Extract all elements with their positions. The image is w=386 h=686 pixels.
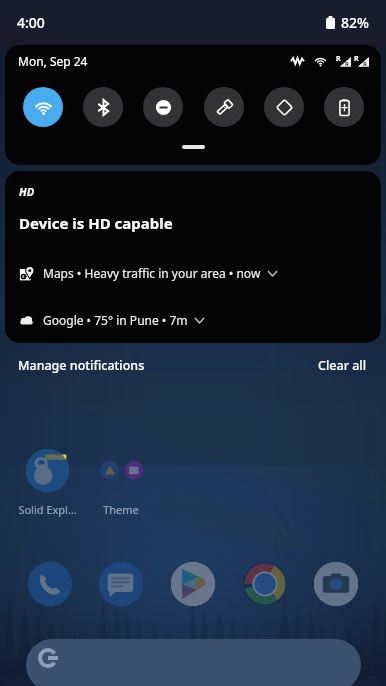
staticText: Theme [103,502,139,517]
button[interactable]: Google • 75° in Pune • 7m [19,312,367,328]
staticText: Maps • Heavy traffic in your area • now [43,265,261,281]
staticText: Solid Expl… [18,502,77,517]
staticText: R [354,54,359,64]
staticText: Mon, Sep 24 [18,53,88,69]
button[interactable]: Google search [26,639,361,686]
button[interactable]: Battery saver [324,87,364,127]
staticText: R [336,54,341,64]
button[interactable]: Solid Expl… [10,449,84,517]
button[interactable]: Play Store [171,562,215,606]
staticText: 82% [341,13,369,32]
button[interactable]: Phone [28,562,72,606]
button[interactable]: Theme [84,449,158,517]
staticText: R [363,60,367,68]
button[interactable]: Auto rotate [264,87,304,127]
button[interactable]: Maps • Heavy traffic in your area • now [19,265,367,281]
button[interactable]: Bluetooth [83,87,123,127]
button[interactable]: Camera [314,562,358,606]
staticText: 4:00 [17,13,45,32]
button[interactable]: Wi-Fi [23,87,63,127]
button[interactable]: Messages [99,562,143,606]
button[interactable]: Clear all [318,357,367,374]
staticText: Device is HD capable [19,213,173,233]
staticText: R [345,60,349,68]
staticText: Google • 75° in Pune • 7m [43,312,188,328]
button[interactable]: Expand quick settings [182,145,205,149]
button[interactable]: HD [5,171,381,343]
staticText: HD [19,184,35,199]
button[interactable]: Do not disturb [143,87,183,127]
button[interactable]: Chrome [243,562,287,606]
button[interactable]: Manage notifications [18,357,145,374]
button[interactable]: Flashlight [204,87,244,127]
